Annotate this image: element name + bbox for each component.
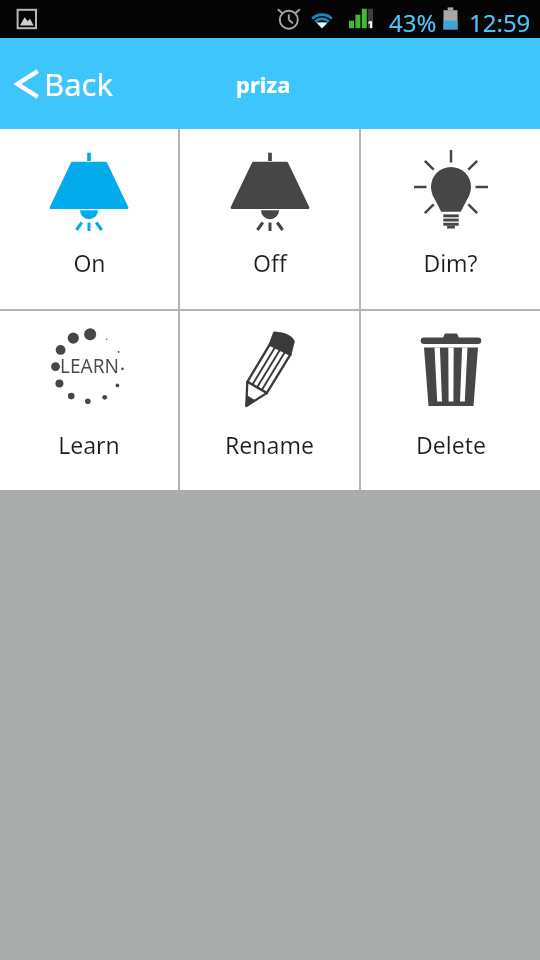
button[interactable]: LEARN bbox=[0, 311, 178, 490]
staticText: Rename bbox=[225, 429, 314, 460]
staticText: 43% bbox=[389, 6, 437, 39]
staticText: Off bbox=[253, 247, 287, 278]
button[interactable]: Rename bbox=[180, 311, 359, 490]
button[interactable]: Off bbox=[180, 129, 359, 309]
staticText: Delete bbox=[416, 429, 486, 460]
staticText: LEARN bbox=[60, 353, 119, 379]
button[interactable]: Delete bbox=[361, 311, 540, 490]
staticText: On bbox=[73, 247, 106, 278]
staticText: priza bbox=[236, 69, 291, 99]
button[interactable]: Back bbox=[0, 38, 133, 129]
staticText: Dim? bbox=[423, 247, 478, 278]
staticText: Learn bbox=[58, 429, 120, 460]
staticText: Back bbox=[44, 63, 113, 105]
button[interactable]: Dim? bbox=[361, 129, 540, 309]
button[interactable]: On bbox=[0, 129, 178, 309]
staticText: 12:59 bbox=[469, 6, 531, 39]
